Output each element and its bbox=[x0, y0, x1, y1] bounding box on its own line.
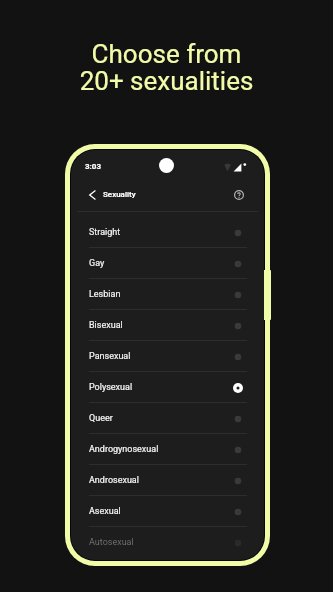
staticText: Autosexual bbox=[89, 537, 134, 548]
button[interactable]: Back bbox=[83, 186, 101, 204]
button[interactable]: Autosexual bbox=[71, 527, 264, 558]
staticText: Queer bbox=[89, 413, 113, 424]
button[interactable]: Androgynosexual bbox=[71, 434, 264, 465]
staticText: Bisexual bbox=[89, 320, 123, 331]
staticText: Sexuality bbox=[103, 190, 136, 199]
staticText: Androgynosexual bbox=[89, 444, 159, 455]
button[interactable]: Gay bbox=[71, 248, 264, 279]
button[interactable]: Queer bbox=[71, 403, 264, 434]
staticText: Gay bbox=[89, 258, 105, 269]
staticText: Lesbian bbox=[89, 289, 121, 300]
staticText: Straight bbox=[89, 227, 121, 238]
staticText: Pansexual bbox=[89, 351, 131, 362]
staticText: Androsexual bbox=[89, 475, 139, 486]
button[interactable]: Polysexual bbox=[71, 372, 264, 403]
staticText: 3:03 bbox=[85, 162, 102, 171]
staticText: Choose from 20+ sexualities bbox=[0, 39, 333, 97]
button[interactable]: Help bbox=[230, 186, 248, 204]
staticText: Polysexual bbox=[89, 382, 133, 393]
button[interactable]: Bisexual bbox=[71, 310, 264, 341]
button[interactable]: Pansexual bbox=[71, 341, 264, 372]
button[interactable]: Lesbian bbox=[71, 279, 264, 310]
staticText: Asexual bbox=[89, 506, 121, 517]
button[interactable]: Androsexual bbox=[71, 465, 264, 496]
button[interactable]: Straight bbox=[71, 217, 264, 248]
button[interactable]: Asexual bbox=[71, 496, 264, 527]
